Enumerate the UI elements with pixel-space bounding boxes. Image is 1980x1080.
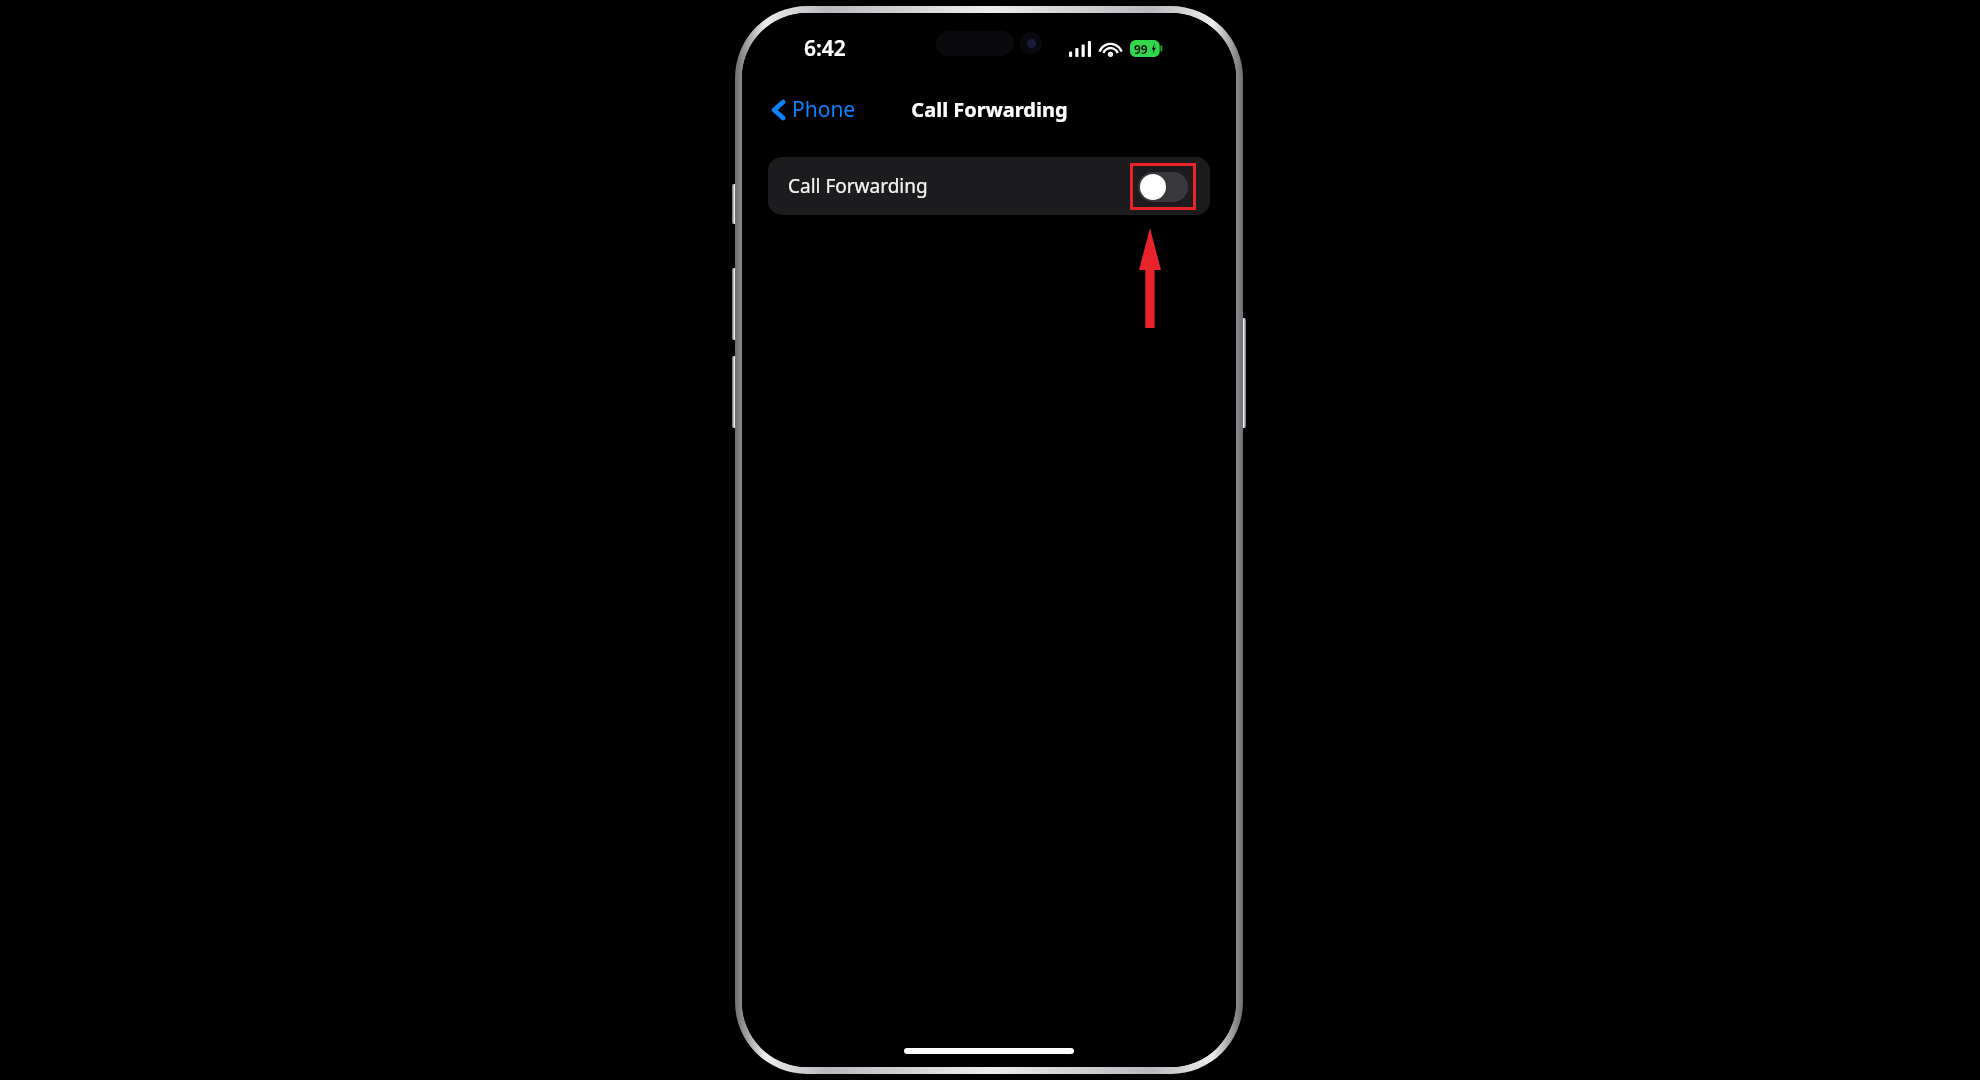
staticText: Call Forwarding xyxy=(911,96,1068,123)
staticText: Call Forwarding xyxy=(788,173,928,199)
staticText: 99 xyxy=(1134,41,1148,57)
staticText: Phone xyxy=(792,95,856,124)
button[interactable]: Call Forwarding xyxy=(768,157,1210,215)
staticText: 6:42 xyxy=(804,34,846,63)
button[interactable]: Call Forwarding toggle, off xyxy=(1130,163,1196,210)
button[interactable]: Phone xyxy=(766,91,862,128)
